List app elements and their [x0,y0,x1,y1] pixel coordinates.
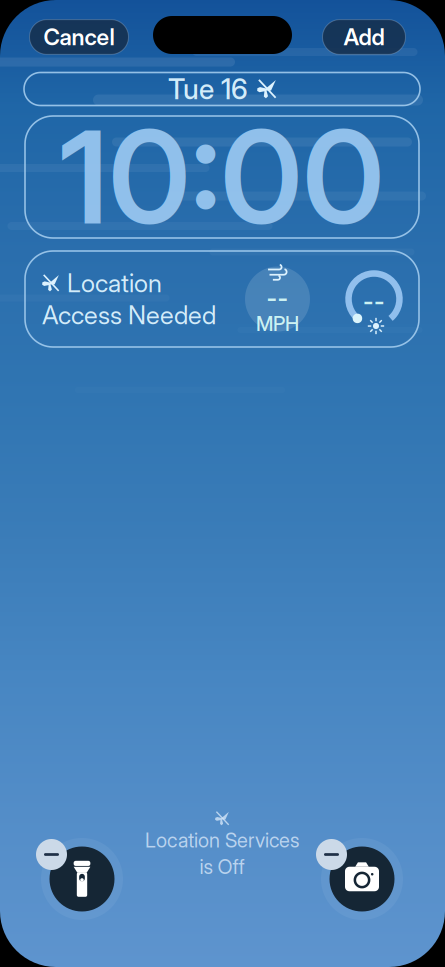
staticText: -- [266,283,288,312]
staticText: Add [343,24,384,50]
button[interactable]: 10:00 [25,116,419,238]
button[interactable]: Cancel [29,20,128,54]
button[interactable]: Remove Flashlight control [41,838,123,920]
button[interactable]: Remove Camera control [321,838,403,920]
staticText: Cancel [43,24,114,50]
staticText: is Off [199,855,244,879]
button[interactable]: Tue 16 [24,72,420,105]
staticText: Location Services [145,828,299,852]
staticText: -- [363,287,385,315]
staticText: Tue 16 [168,72,248,105]
staticText: 10:00 [59,101,384,252]
staticText: MPH [256,312,299,335]
button[interactable]: Add [322,20,405,54]
staticText: Access Needed [42,300,216,330]
staticText: Location [67,268,162,298]
button[interactable]: Location [25,251,419,347]
